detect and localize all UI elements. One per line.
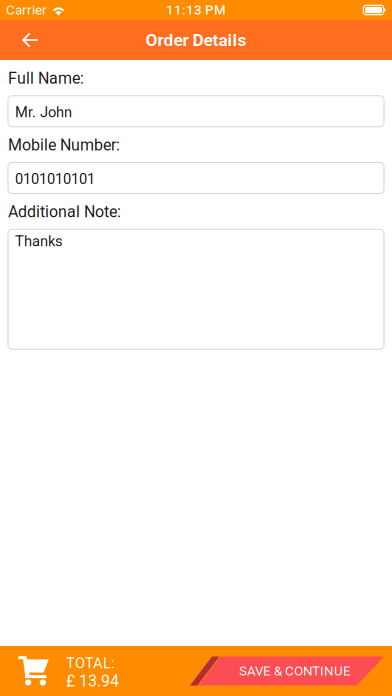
staticText: £ 13.94	[66, 672, 119, 690]
button[interactable]: Back	[0, 20, 52, 60]
staticText: Mobile Number:	[8, 136, 120, 155]
staticText: Full Name:	[8, 69, 84, 88]
staticText: Carrier	[6, 2, 47, 18]
staticText: Thanks	[15, 233, 63, 250]
staticText: Additional Note:	[8, 202, 121, 221]
staticText: Mr. John	[15, 104, 72, 121]
staticText: SAVE & CONTINUE	[239, 663, 351, 679]
staticText: TOTAL:	[66, 654, 115, 672]
staticText: 11:13 PM	[166, 2, 226, 18]
staticText: Order Details	[145, 30, 246, 50]
button[interactable]: SAVE & CONTINUE	[190, 656, 384, 685]
staticText: 0101010101	[15, 170, 95, 188]
